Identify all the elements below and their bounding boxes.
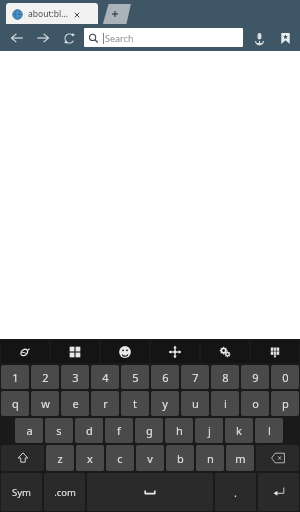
button[interactable]: Forward — [30, 25, 56, 51]
button[interactable]: .com — [44, 473, 85, 511]
button[interactable]: New tab — [96, 4, 134, 24]
staticText: r — [103, 396, 108, 411]
staticText: . — [234, 485, 237, 500]
button[interactable]: q — [1, 391, 29, 416]
staticText: about:bl… — [28, 8, 68, 20]
staticText: v — [147, 451, 153, 466]
button[interactable]: Search — [84, 28, 243, 47]
button[interactable]: n — [196, 445, 224, 471]
button[interactable]: m — [226, 445, 254, 471]
staticText: 5 — [132, 370, 139, 385]
button[interactable]: e — [61, 391, 89, 416]
button[interactable]: 0 — [271, 365, 299, 389]
button[interactable]: Space — [87, 473, 213, 511]
button[interactable]: o — [241, 391, 269, 416]
button[interactable]: Close tab — [71, 9, 82, 20]
staticText: j — [208, 423, 211, 438]
staticText: 1 — [12, 370, 19, 385]
button[interactable]: w — [31, 391, 59, 416]
button[interactable]: 1 — [1, 365, 29, 389]
staticText: Sym — [12, 486, 31, 499]
staticText: h — [176, 423, 183, 438]
staticText: b — [177, 451, 184, 466]
button[interactable]: p — [271, 391, 299, 416]
staticText: a — [26, 423, 33, 438]
staticText: o — [252, 396, 259, 411]
staticText: w — [41, 396, 50, 411]
button[interactable]: x — [76, 445, 104, 471]
button[interactable]: 8 — [211, 365, 239, 389]
button[interactable]: c — [106, 445, 134, 471]
button[interactable]: Bookmarks — [272, 25, 298, 51]
staticText: 6 — [162, 370, 169, 385]
button[interactable]: Sym — [1, 473, 42, 511]
staticText: .com — [54, 486, 76, 499]
staticText: u — [192, 396, 199, 411]
staticText: 7 — [192, 370, 199, 385]
button[interactable]: l — [255, 418, 283, 443]
staticText: x — [87, 451, 93, 466]
button[interactable]: r — [91, 391, 119, 416]
button[interactable]: Back — [4, 25, 30, 51]
staticText: 4 — [102, 370, 109, 385]
button[interactable]: 7 — [181, 365, 209, 389]
staticText: g — [146, 423, 153, 438]
staticText: 9 — [252, 370, 259, 385]
button[interactable]: k — [225, 418, 253, 443]
button[interactable]: 9 — [241, 365, 269, 389]
button[interactable]: t — [121, 391, 149, 416]
staticText: z — [57, 451, 63, 466]
button[interactable]: z — [46, 445, 74, 471]
staticText: 8 — [222, 370, 229, 385]
button[interactable]: s — [45, 418, 73, 443]
staticText: s — [56, 423, 62, 438]
button[interactable]: 2 — [31, 365, 59, 389]
staticText: 3 — [72, 370, 79, 385]
button[interactable]: Handwriting — [1, 340, 49, 363]
button[interactable]: a — [15, 418, 43, 443]
button[interactable]: 6 — [151, 365, 179, 389]
button[interactable]: Enter — [258, 473, 299, 511]
staticText: l — [268, 423, 271, 438]
button[interactable]: Layouts — [251, 340, 299, 363]
button[interactable]: Settings — [201, 340, 249, 363]
button[interactable]: d — [75, 418, 103, 443]
staticText: d — [86, 423, 93, 438]
button[interactable]: about:bl… — [6, 3, 98, 24]
button[interactable]: . — [215, 473, 256, 511]
staticText: c — [117, 451, 123, 466]
staticText: 2 — [42, 370, 49, 385]
staticText: i — [224, 396, 227, 411]
button[interactable]: g — [135, 418, 163, 443]
staticText: f — [117, 423, 121, 438]
button[interactable]: y — [151, 391, 179, 416]
button[interactable]: i — [211, 391, 239, 416]
staticText: 0 — [282, 370, 289, 385]
staticText: q — [12, 396, 19, 411]
button[interactable]: 5 — [121, 365, 149, 389]
button[interactable]: h — [165, 418, 193, 443]
button[interactable]: Shift — [1, 445, 44, 471]
staticText: Search — [105, 32, 134, 44]
staticText: m — [235, 451, 246, 466]
button[interactable]: f — [105, 418, 133, 443]
button[interactable]: Move keyboard — [151, 340, 199, 363]
staticText: t — [133, 396, 137, 411]
button[interactable]: Reload — [56, 25, 82, 51]
staticText: p — [282, 396, 289, 411]
button[interactable]: Emoji — [101, 340, 149, 363]
button[interactable]: Keypad — [51, 340, 99, 363]
button[interactable]: b — [166, 445, 194, 471]
staticText: e — [72, 396, 79, 411]
button[interactable]: u — [181, 391, 209, 416]
button[interactable]: Backspace — [256, 445, 299, 471]
button[interactable]: 3 — [61, 365, 89, 389]
button[interactable]: 4 — [91, 365, 119, 389]
button[interactable]: v — [136, 445, 164, 471]
staticText: y — [162, 396, 168, 411]
button[interactable]: j — [195, 418, 223, 443]
staticText: n — [207, 451, 214, 466]
button[interactable]: Voice search — [246, 25, 272, 51]
staticText: k — [236, 423, 242, 438]
